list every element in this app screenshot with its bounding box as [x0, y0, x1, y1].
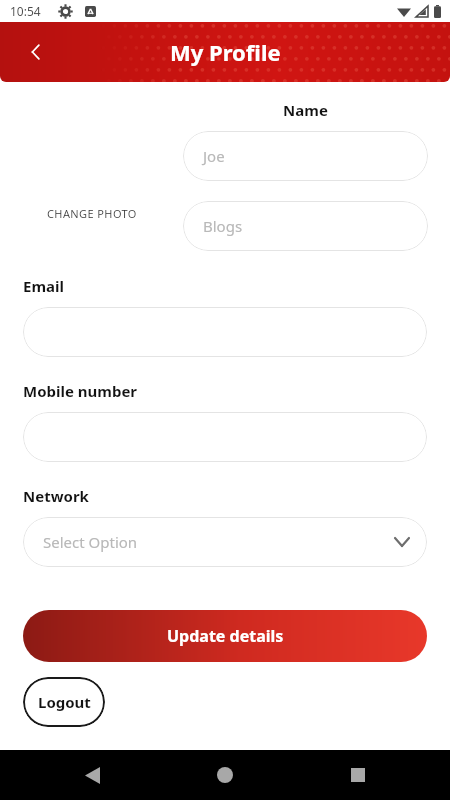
- button[interactable]: [23, 307, 427, 357]
- staticText: CHANGE PHOTO: [47, 206, 137, 221]
- button[interactable]: Recent apps: [341, 758, 375, 792]
- button[interactable]: Blogs: [183, 201, 428, 251]
- staticText: Mobile number: [23, 381, 138, 401]
- staticText: Joe: [203, 146, 225, 166]
- button[interactable]: CHANGE PHOTO: [41, 202, 143, 225]
- staticText: Logout: [38, 692, 91, 712]
- button[interactable]: Back: [75, 758, 109, 792]
- button[interactable]: Select Option: [23, 517, 427, 567]
- button[interactable]: Joe: [183, 131, 428, 181]
- button[interactable]: Logout: [23, 677, 105, 727]
- staticText: Blogs: [203, 216, 243, 236]
- staticText: Name: [283, 100, 328, 120]
- staticText: My Profile: [170, 37, 281, 67]
- button[interactable]: Back: [14, 30, 58, 74]
- staticText: Email: [23, 276, 64, 296]
- staticText: Network: [23, 486, 89, 506]
- button[interactable]: Update details: [23, 610, 427, 662]
- staticText: 10:54: [10, 3, 41, 19]
- staticText: Select Option: [43, 532, 138, 552]
- button[interactable]: [23, 412, 427, 462]
- button[interactable]: Home: [208, 758, 242, 792]
- staticText: Update details: [167, 625, 284, 647]
